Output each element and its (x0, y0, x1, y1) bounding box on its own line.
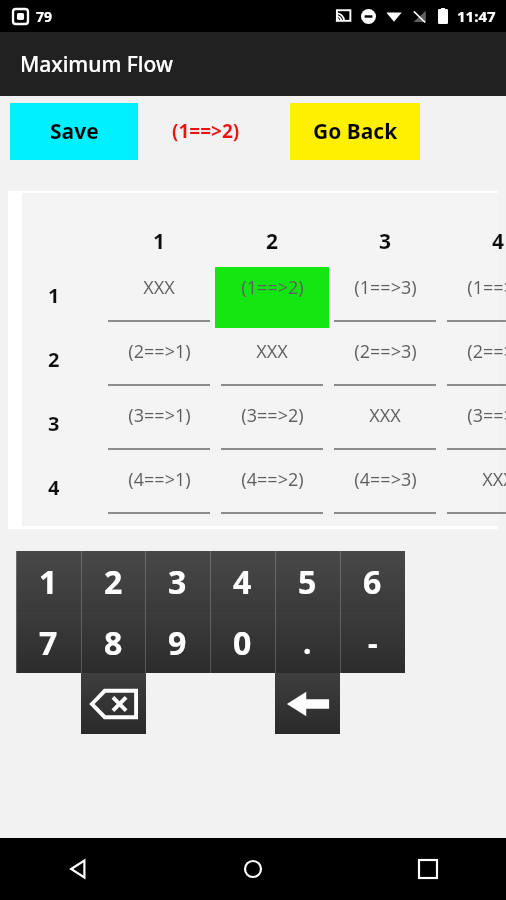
staticText: 6 (363, 560, 382, 604)
button[interactable]: Save (10, 103, 138, 160)
button[interactable]: 5 (275, 551, 340, 612)
staticText: 9 (168, 621, 187, 665)
staticText: (4==>2) (241, 467, 304, 492)
button[interactable]: Back (54, 845, 102, 893)
staticText: (1==>2) (241, 275, 304, 300)
staticText: 2 (48, 346, 60, 373)
staticText: (1==>3) (354, 275, 417, 300)
staticText: 79 (36, 7, 53, 26)
staticText: - (368, 622, 378, 663)
staticText: (4==>3) (354, 467, 417, 492)
staticText: 4 (233, 560, 252, 604)
button[interactable]: (2==>4) (441, 331, 506, 392)
staticText: (2==>1) (128, 339, 191, 364)
staticText: 1 (153, 227, 166, 256)
button[interactable]: . (275, 612, 340, 673)
staticText: (2==>3) (354, 339, 417, 364)
button[interactable]: 7 (16, 612, 81, 673)
staticText: 3 (379, 227, 392, 256)
staticText: 2 (104, 560, 123, 604)
button[interactable]: (4==>2) (215, 459, 329, 520)
button[interactable]: 8 (81, 612, 146, 673)
staticText: 7 (39, 621, 58, 665)
staticText: Go Back (313, 117, 398, 146)
button[interactable]: - (340, 612, 405, 673)
staticText: (3==>2) (241, 403, 304, 428)
button[interactable]: (3==>4) (441, 395, 506, 456)
button[interactable]: XXX (215, 331, 329, 392)
button[interactable]: Backspace (81, 673, 146, 734)
button[interactable]: (3==>1) (102, 395, 216, 456)
staticText: (3==>4) (467, 403, 506, 428)
button[interactable]: 3 (145, 551, 210, 612)
button[interactable]: Go Back (290, 103, 420, 160)
staticText: XXX (256, 339, 288, 364)
staticText: (3==>1) (128, 403, 191, 428)
button[interactable]: (2==>3) (328, 331, 442, 392)
staticText: 3 (168, 560, 187, 604)
button[interactable]: 6 (340, 551, 405, 612)
button[interactable]: 2 (81, 551, 146, 612)
button[interactable]: Enter (275, 673, 340, 734)
button[interactable]: 0 (210, 612, 275, 673)
staticText: 4 (48, 474, 60, 501)
button[interactable]: (4==>3) (328, 459, 442, 520)
staticText: 1 (48, 282, 60, 309)
staticText: 3 (48, 410, 60, 437)
button[interactable]: 9 (145, 612, 210, 673)
button[interactable]: (3==>2) (215, 395, 329, 456)
button[interactable]: XXX (102, 267, 216, 328)
staticText: Maximum Flow (20, 50, 173, 79)
button[interactable]: (1==>2) (215, 267, 329, 328)
button[interactable]: XXX (328, 395, 442, 456)
button[interactable]: (1==>4) (441, 267, 506, 328)
staticText: . (303, 622, 312, 663)
staticText: XXX (369, 403, 401, 428)
button[interactable]: (1==>3) (328, 267, 442, 328)
staticText: (1==>2) (172, 118, 240, 144)
staticText: XXX (143, 275, 175, 300)
staticText: XXX (482, 467, 506, 492)
staticText: (4==>1) (128, 467, 191, 492)
button[interactable]: XXX (441, 459, 506, 520)
staticText: 8 (104, 621, 123, 665)
button[interactable]: (2==>1) (102, 331, 216, 392)
button[interactable]: Home (229, 845, 277, 893)
button[interactable]: (4==>1) (102, 459, 216, 520)
staticText: 0 (233, 621, 252, 665)
button[interactable]: 4 (210, 551, 275, 612)
button[interactable]: 1 (16, 551, 81, 612)
staticText: (1==>4) (467, 275, 506, 300)
staticText: Save (50, 117, 99, 146)
staticText: 2 (266, 227, 279, 256)
staticText: 4 (492, 227, 505, 256)
staticText: 1 (39, 560, 58, 604)
staticText: (2==>4) (467, 339, 506, 364)
staticText: 5 (298, 560, 317, 604)
button[interactable]: Recent apps (404, 845, 452, 893)
staticText: 11:47 (457, 6, 496, 26)
